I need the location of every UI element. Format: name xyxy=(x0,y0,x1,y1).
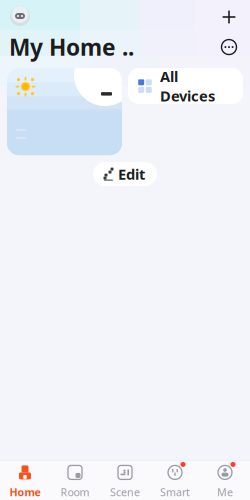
button[interactable]: Scene xyxy=(100,466,150,496)
button[interactable]: All Devices xyxy=(128,68,243,104)
staticText: Room xyxy=(60,485,89,499)
button[interactable]: Me xyxy=(200,466,250,496)
staticText: My Home .. xyxy=(9,32,134,62)
button[interactable]: Profile xyxy=(8,4,32,28)
staticText: Edit xyxy=(118,164,145,184)
staticText: Me xyxy=(217,485,233,499)
button[interactable]: Weather xyxy=(7,68,122,155)
button[interactable]: Home xyxy=(0,466,50,496)
button[interactable]: Smart xyxy=(150,466,200,496)
staticText: All Devices xyxy=(160,67,215,106)
staticText: Scene xyxy=(110,485,140,499)
staticText: Smart xyxy=(160,485,190,499)
button[interactable]: Add xyxy=(214,4,244,30)
button[interactable]: Room xyxy=(50,466,100,496)
staticText: Home xyxy=(9,485,40,499)
button[interactable]: More options xyxy=(214,35,244,59)
button[interactable]: Edit xyxy=(93,162,157,186)
